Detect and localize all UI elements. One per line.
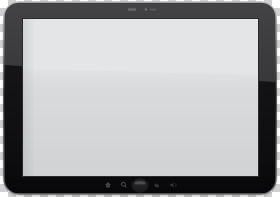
button[interactable]: Volume [166, 178, 180, 192]
button[interactable]: Back [150, 178, 164, 192]
button[interactable]: Tablet screen [23, 19, 258, 176]
button[interactable]: Search [117, 178, 131, 192]
button[interactable]: Home [101, 178, 115, 192]
button[interactable]: Home screen [133, 178, 147, 192]
